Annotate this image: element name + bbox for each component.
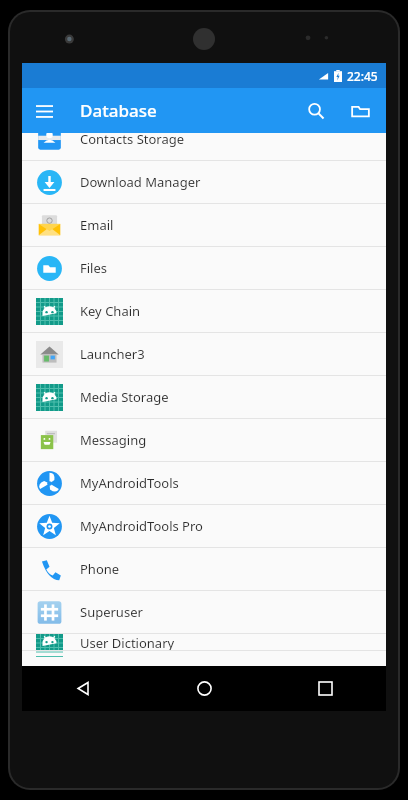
staticText: Phone: [80, 560, 120, 578]
staticText: Email: [80, 216, 114, 234]
button[interactable]: Home: [144, 666, 265, 711]
staticText: Messaging: [80, 431, 147, 449]
button[interactable]: MyAndroidTools: [22, 462, 386, 505]
staticText: MyAndroidTools Pro: [80, 517, 203, 535]
staticText: Launcher3: [80, 345, 145, 363]
button[interactable]: Search: [294, 89, 338, 133]
staticText: Contacts Storage: [80, 133, 185, 148]
button[interactable]: Messaging: [22, 419, 386, 462]
button[interactable]: Launcher3: [22, 333, 386, 376]
button[interactable]: Folders: [338, 89, 382, 133]
button[interactable]: Email: [22, 204, 386, 247]
staticText: 22:45: [347, 68, 378, 84]
button[interactable]: MyAndroidTools Pro: [22, 505, 386, 548]
staticText: Download Manager: [80, 173, 201, 191]
staticText: MyAndroidTools: [80, 474, 179, 492]
button[interactable]: Recent apps: [265, 666, 386, 711]
button[interactable]: Phone: [22, 548, 386, 591]
staticText: User Dictionary: [80, 634, 175, 650]
button[interactable]: User Dictionary: [22, 634, 386, 651]
button[interactable]: Media Storage: [22, 376, 386, 419]
button[interactable]: Superuser: [22, 591, 386, 634]
button[interactable]: Contacts Storage: [22, 133, 386, 161]
staticText: Superuser: [80, 603, 143, 621]
button[interactable]: Key Chain: [22, 290, 386, 333]
button[interactable]: Back: [22, 666, 144, 711]
button[interactable]: Download Manager: [22, 161, 386, 204]
staticText: Media Storage: [80, 388, 169, 406]
button[interactable]: Open navigation drawer: [22, 89, 66, 133]
staticText: Database: [80, 99, 157, 122]
staticText: Files: [80, 259, 108, 277]
button[interactable]: Files: [22, 247, 386, 290]
staticText: Key Chain: [80, 302, 141, 320]
